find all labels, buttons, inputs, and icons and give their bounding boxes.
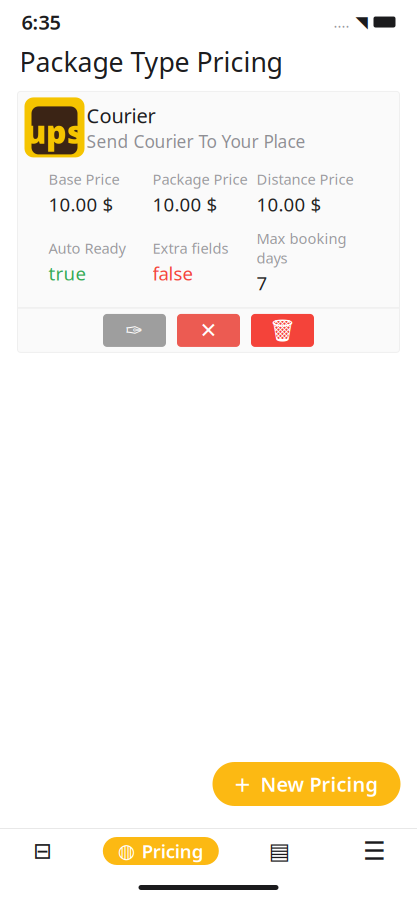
staticText: ✕ — [199, 318, 217, 342]
staticText: Send Courier To Your Place — [86, 130, 305, 153]
staticText: ◥ — [355, 13, 367, 31]
button[interactable]: + — [212, 762, 400, 806]
button[interactable]: Edit — [103, 314, 166, 347]
button[interactable]: Orders — [7, 829, 77, 873]
staticText: .... — [333, 12, 349, 32]
staticText: ups — [25, 110, 84, 153]
staticText: ◍ — [118, 840, 135, 862]
staticText: ⊟ — [33, 838, 52, 864]
staticText: 7 — [256, 271, 267, 295]
staticText: false — [152, 261, 193, 286]
staticText: 10.00 $ — [256, 192, 321, 217]
staticText: ▤ — [269, 838, 290, 864]
staticText: Pricing — [142, 839, 204, 863]
staticText: Auto Ready — [48, 238, 125, 258]
staticText: Max booking days — [256, 229, 346, 268]
button[interactable]: Business — [244, 829, 314, 873]
staticText: 6:35 — [21, 9, 60, 35]
button[interactable]: ◍ — [103, 837, 219, 865]
staticText: + — [234, 765, 250, 803]
staticText: Package Type Pricing — [19, 44, 282, 79]
staticText: ☰ — [363, 837, 386, 865]
staticText: Distance Price — [256, 169, 353, 189]
staticText: Extra fields — [152, 238, 228, 258]
staticText: ✑ — [125, 318, 143, 342]
button[interactable]: Delete — [251, 314, 314, 347]
staticText: 10.00 $ — [152, 192, 217, 217]
button[interactable]: Deactivate — [177, 314, 240, 347]
staticText: Base Price — [48, 169, 119, 189]
staticText: 🗑 — [269, 318, 296, 343]
button[interactable]: Menu — [339, 829, 409, 873]
staticText: Package Price — [152, 169, 247, 189]
staticText: New Pricing — [260, 771, 378, 797]
staticText: 10.00 $ — [48, 192, 113, 217]
staticText: true — [48, 261, 86, 286]
staticText: Courier — [86, 102, 155, 129]
